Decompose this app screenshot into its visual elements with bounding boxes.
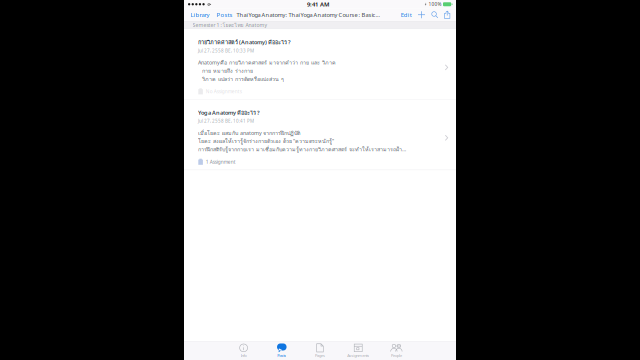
staticText: Info: [241, 353, 247, 358]
staticText: การฝึกสติรับรู้จากกายเรา มาเชื่อมกับความ…: [198, 145, 406, 154]
button[interactable]: กายวิภาคศาสตร์ (Anatomy) คืออะไร ?: [184, 29, 456, 99]
staticText: Anatomyคือ กายวิภาคศาสตร์ มาจากคำว่า กาย…: [198, 58, 336, 67]
staticText: 9:41 AM: [307, 0, 329, 8]
staticText: โยคะ สงผลให้เรารู้จักร่างกายตัวเอง ด้วย …: [198, 137, 334, 145]
staticText: กายวิภาคศาสตร์ (Anatomy) คืออะไร ?: [198, 38, 291, 47]
button[interactable]: Library: [187, 8, 213, 21]
staticText: Edit: [401, 11, 412, 19]
button[interactable]: Posts: [263, 342, 301, 360]
staticText: Jul 27, 2558 BE, 10:41 PM: [198, 118, 254, 124]
staticText: Thai Yoga Anatomy: Thai Yoga Anatomy Cou…: [236, 11, 379, 19]
staticText: Jul 27, 2558 BE, 10:33 PM: [198, 48, 254, 54]
staticText: 100%: [429, 1, 442, 7]
staticText: Yoga Anatomy คืออะไร ?: [198, 108, 260, 117]
button[interactable]: Search: [428, 8, 441, 21]
staticText: วิภาค แปลว่า การตัดหรือแบ่งส่วน ๆ: [198, 75, 284, 83]
button[interactable]: Assignments: [339, 342, 377, 360]
staticText: กาย หมายถึง ร่างกาย: [198, 67, 253, 75]
button[interactable]: People: [377, 342, 415, 360]
staticText: Semester 1 : โยคะไทย Anatomy: [192, 21, 267, 29]
button[interactable]: Pages: [301, 342, 339, 360]
button[interactable]: Posts: [213, 8, 236, 21]
staticText: Posts: [277, 353, 286, 358]
staticText: No Assignments: [206, 88, 242, 95]
staticText: เมื่อโยคะ ผสมกับ anatomy จากการฝึกปฏิบัต…: [198, 129, 300, 137]
button[interactable]: Info: [224, 342, 263, 360]
button[interactable]: Edit: [398, 8, 415, 21]
button[interactable]: Share: [441, 8, 453, 21]
button[interactable]: New post: [415, 8, 428, 21]
staticText: Posts: [216, 11, 232, 19]
button[interactable]: Yoga Anatomy คืออะไร ?: [184, 100, 456, 170]
staticText: Pages: [315, 353, 325, 358]
staticText: People: [391, 353, 402, 358]
staticText: Assignments: [347, 353, 369, 358]
staticText: Library: [190, 11, 209, 19]
staticText: 1 Assignment: [206, 158, 236, 165]
